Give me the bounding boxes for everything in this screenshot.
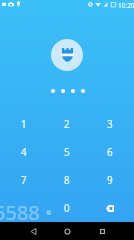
button[interactable]: 3 (88, 110, 131, 138)
button[interactable]: 4 (3, 138, 45, 166)
staticText: 8 (64, 173, 70, 187)
button[interactable]: 5 (45, 138, 88, 166)
staticText: 9 (107, 173, 113, 187)
staticText: 5 (64, 145, 70, 159)
button[interactable]: 9 (88, 166, 131, 194)
button[interactable]: 1 (3, 110, 45, 138)
button[interactable]: 0 (45, 194, 88, 222)
button[interactable]: 2 (45, 110, 88, 138)
staticText: 10:20 (118, 1, 134, 10)
button[interactable]: Back (22, 222, 44, 240)
button[interactable]: 7 (3, 166, 45, 194)
button[interactable]: Home (56, 222, 78, 240)
button[interactable]: 8 (45, 166, 88, 194)
staticText: 0 (64, 201, 70, 215)
staticText: 2 (64, 117, 70, 131)
staticText: 1 (21, 117, 27, 131)
staticText: 6 (107, 145, 113, 159)
button[interactable]: Recent apps (91, 222, 113, 240)
staticText: 7 (21, 173, 27, 187)
staticText: 5588 • MX5588 (0, 199, 128, 240)
staticText: 4 (21, 145, 27, 159)
button[interactable]: 6 (88, 138, 131, 166)
staticText: 3 (107, 117, 113, 131)
button[interactable]: Delete (88, 194, 131, 222)
